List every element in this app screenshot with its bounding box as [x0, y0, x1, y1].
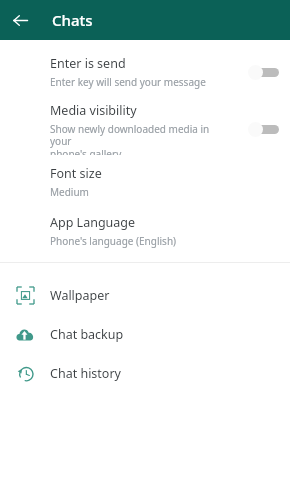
button[interactable]: Back — [8, 8, 32, 32]
button[interactable]: App Language — [0, 212, 290, 250]
staticText: App Language — [50, 214, 136, 231]
button[interactable]: Font size — [0, 163, 290, 201]
staticText: Enter key will send your message — [50, 75, 206, 89]
staticText: Wallpaper — [50, 287, 110, 304]
staticText: Font size — [50, 165, 102, 182]
staticText: Chat history — [50, 365, 121, 382]
button[interactable]: Wallpaper — [0, 276, 290, 315]
staticText: Medium — [50, 185, 89, 199]
button[interactable]: Chat history — [0, 354, 290, 393]
staticText: Media visibility — [50, 102, 137, 119]
button[interactable]: Chat backup — [0, 315, 290, 354]
staticText: Enter is send — [50, 55, 126, 72]
staticText: Chats — [52, 10, 93, 30]
button[interactable]: Toggle off — [248, 120, 279, 138]
staticText: Show newly downloaded media in your phon… — [50, 122, 215, 155]
button[interactable]: Enter is send — [0, 51, 290, 93]
staticText: Phone's language (English) — [50, 234, 177, 248]
button[interactable]: Media visibility — [0, 102, 290, 155]
staticText: Chat backup — [50, 326, 124, 343]
button[interactable]: Toggle off — [248, 63, 279, 81]
